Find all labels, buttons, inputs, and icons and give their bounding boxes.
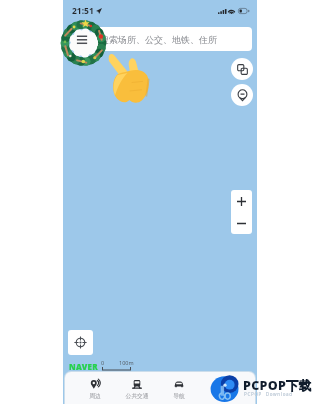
button[interactable]: Place [231,84,253,106]
staticText: 我的 [215,392,227,399]
button[interactable]: Zoom out [231,212,252,234]
button[interactable]: 公共交通 [116,372,158,404]
button[interactable]: Layers [231,58,253,80]
staticText: PCPOP Download [244,391,293,397]
staticText: 公共交通 [125,392,149,399]
staticText: 0 [101,359,105,366]
staticText: 21:51 [72,5,94,17]
button[interactable]: My location [68,330,93,355]
button[interactable]: 我的 [200,372,242,404]
button[interactable]: Menu [61,20,106,66]
button[interactable]: Zoom in [231,190,252,212]
staticText: 搜索场所、公交、地铁、住所 [100,34,217,45]
staticText: PCPOP下载 [243,377,312,394]
staticText: 100m [119,359,134,366]
staticText: NAVER [69,361,99,372]
button[interactable]: 搜索场所、公交、地铁、住所 [94,27,252,51]
button[interactable]: 周边 [74,372,116,404]
button[interactable]: 导航 [158,372,200,404]
staticText: 周边 [89,392,101,399]
staticText: 导航 [173,392,185,399]
